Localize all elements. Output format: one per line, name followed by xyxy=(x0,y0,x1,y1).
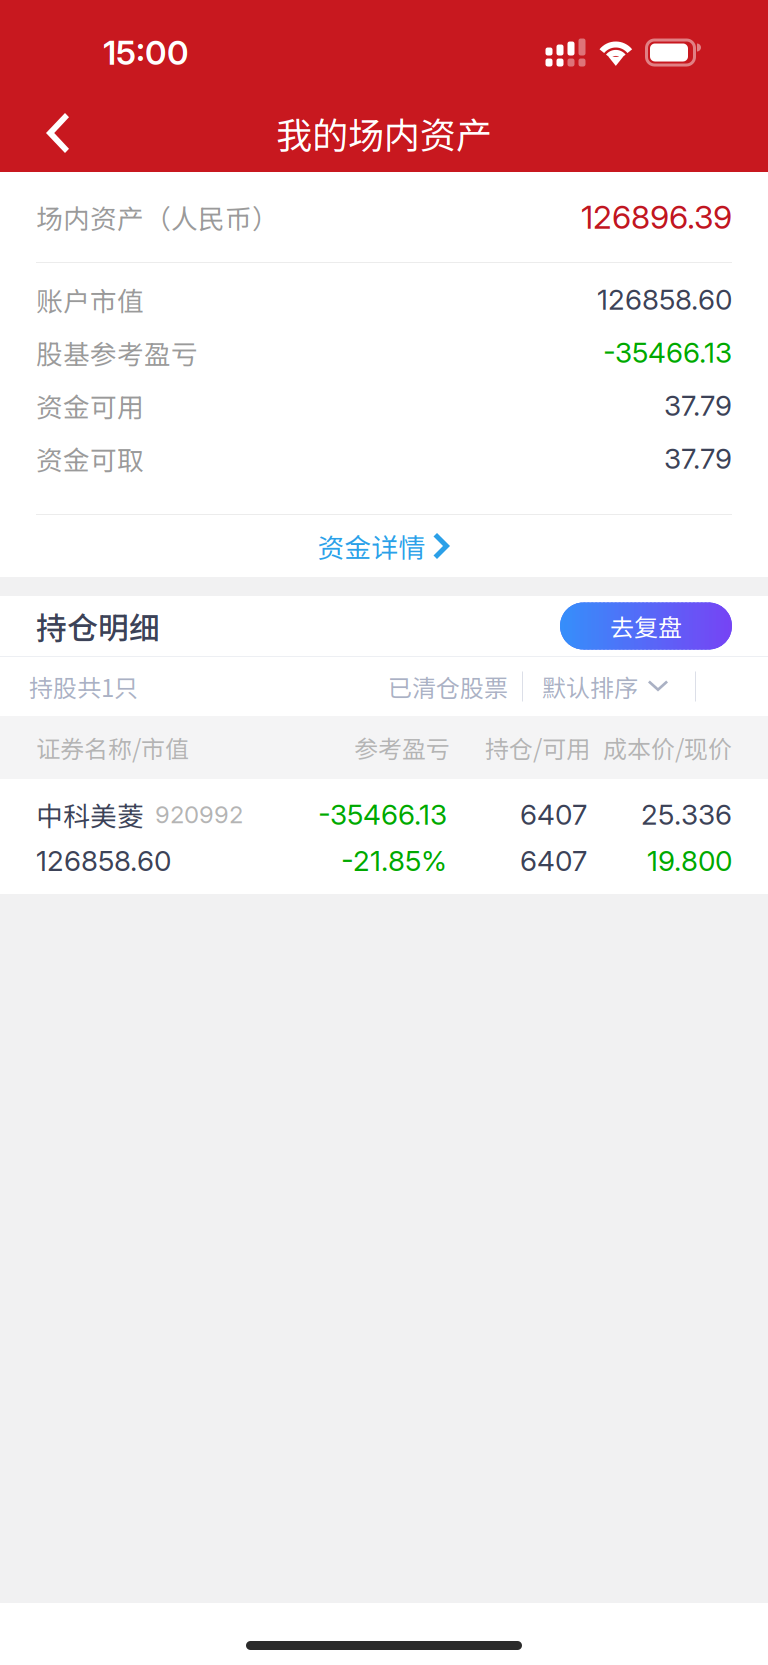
button[interactable]: 中科美菱 xyxy=(0,779,768,894)
staticText: 账户市值 xyxy=(36,280,144,319)
staticText: 持仓/可用 xyxy=(485,730,590,765)
staticText: 场内资产（人民币） xyxy=(36,198,279,236)
staticText: 25.336 xyxy=(641,798,732,831)
staticText: -35466.13 xyxy=(603,336,732,369)
button[interactable]: 默认排序 xyxy=(542,657,668,716)
button[interactable]: 已清仓股票 xyxy=(388,657,508,716)
staticText: 37.79 xyxy=(664,389,732,422)
staticText: 已清仓股票 xyxy=(388,669,508,704)
staticText: 920992 xyxy=(155,800,243,829)
button[interactable]: 去复盘 xyxy=(560,602,732,649)
staticText: 6407 xyxy=(520,798,587,831)
staticText: 资金详情 xyxy=(317,527,425,565)
staticText: 股基参考盈亏 xyxy=(36,333,198,372)
button[interactable]: Back xyxy=(0,94,93,172)
button[interactable]: 资金详情 xyxy=(0,515,768,577)
staticText: 19.800 xyxy=(647,844,732,878)
staticText: 126858.60 xyxy=(36,844,171,878)
staticText: -21.85% xyxy=(341,844,447,878)
staticText: 37.79 xyxy=(664,442,732,475)
staticText: 参考盈亏 xyxy=(354,730,450,765)
staticText: 持仓明细 xyxy=(36,604,160,648)
staticText: -35466.13 xyxy=(318,798,447,831)
staticText: 15:00 xyxy=(103,32,189,73)
staticText: 中科美菱 xyxy=(36,795,144,834)
staticText: 去复盘 xyxy=(610,609,682,643)
staticText: 126858.60 xyxy=(597,283,732,316)
staticText: 6407 xyxy=(520,844,587,878)
staticText: 证券名称/市值 xyxy=(36,730,189,765)
staticText: 资金可用 xyxy=(36,386,144,425)
staticText: 成本价/现价 xyxy=(603,730,732,765)
staticText: 126896.39 xyxy=(581,198,732,236)
staticText: 持股共1只 xyxy=(29,669,138,704)
staticText: 默认排序 xyxy=(542,669,638,704)
staticText: 资金可取 xyxy=(36,439,144,478)
staticText: 我的场内资产 xyxy=(276,107,492,159)
